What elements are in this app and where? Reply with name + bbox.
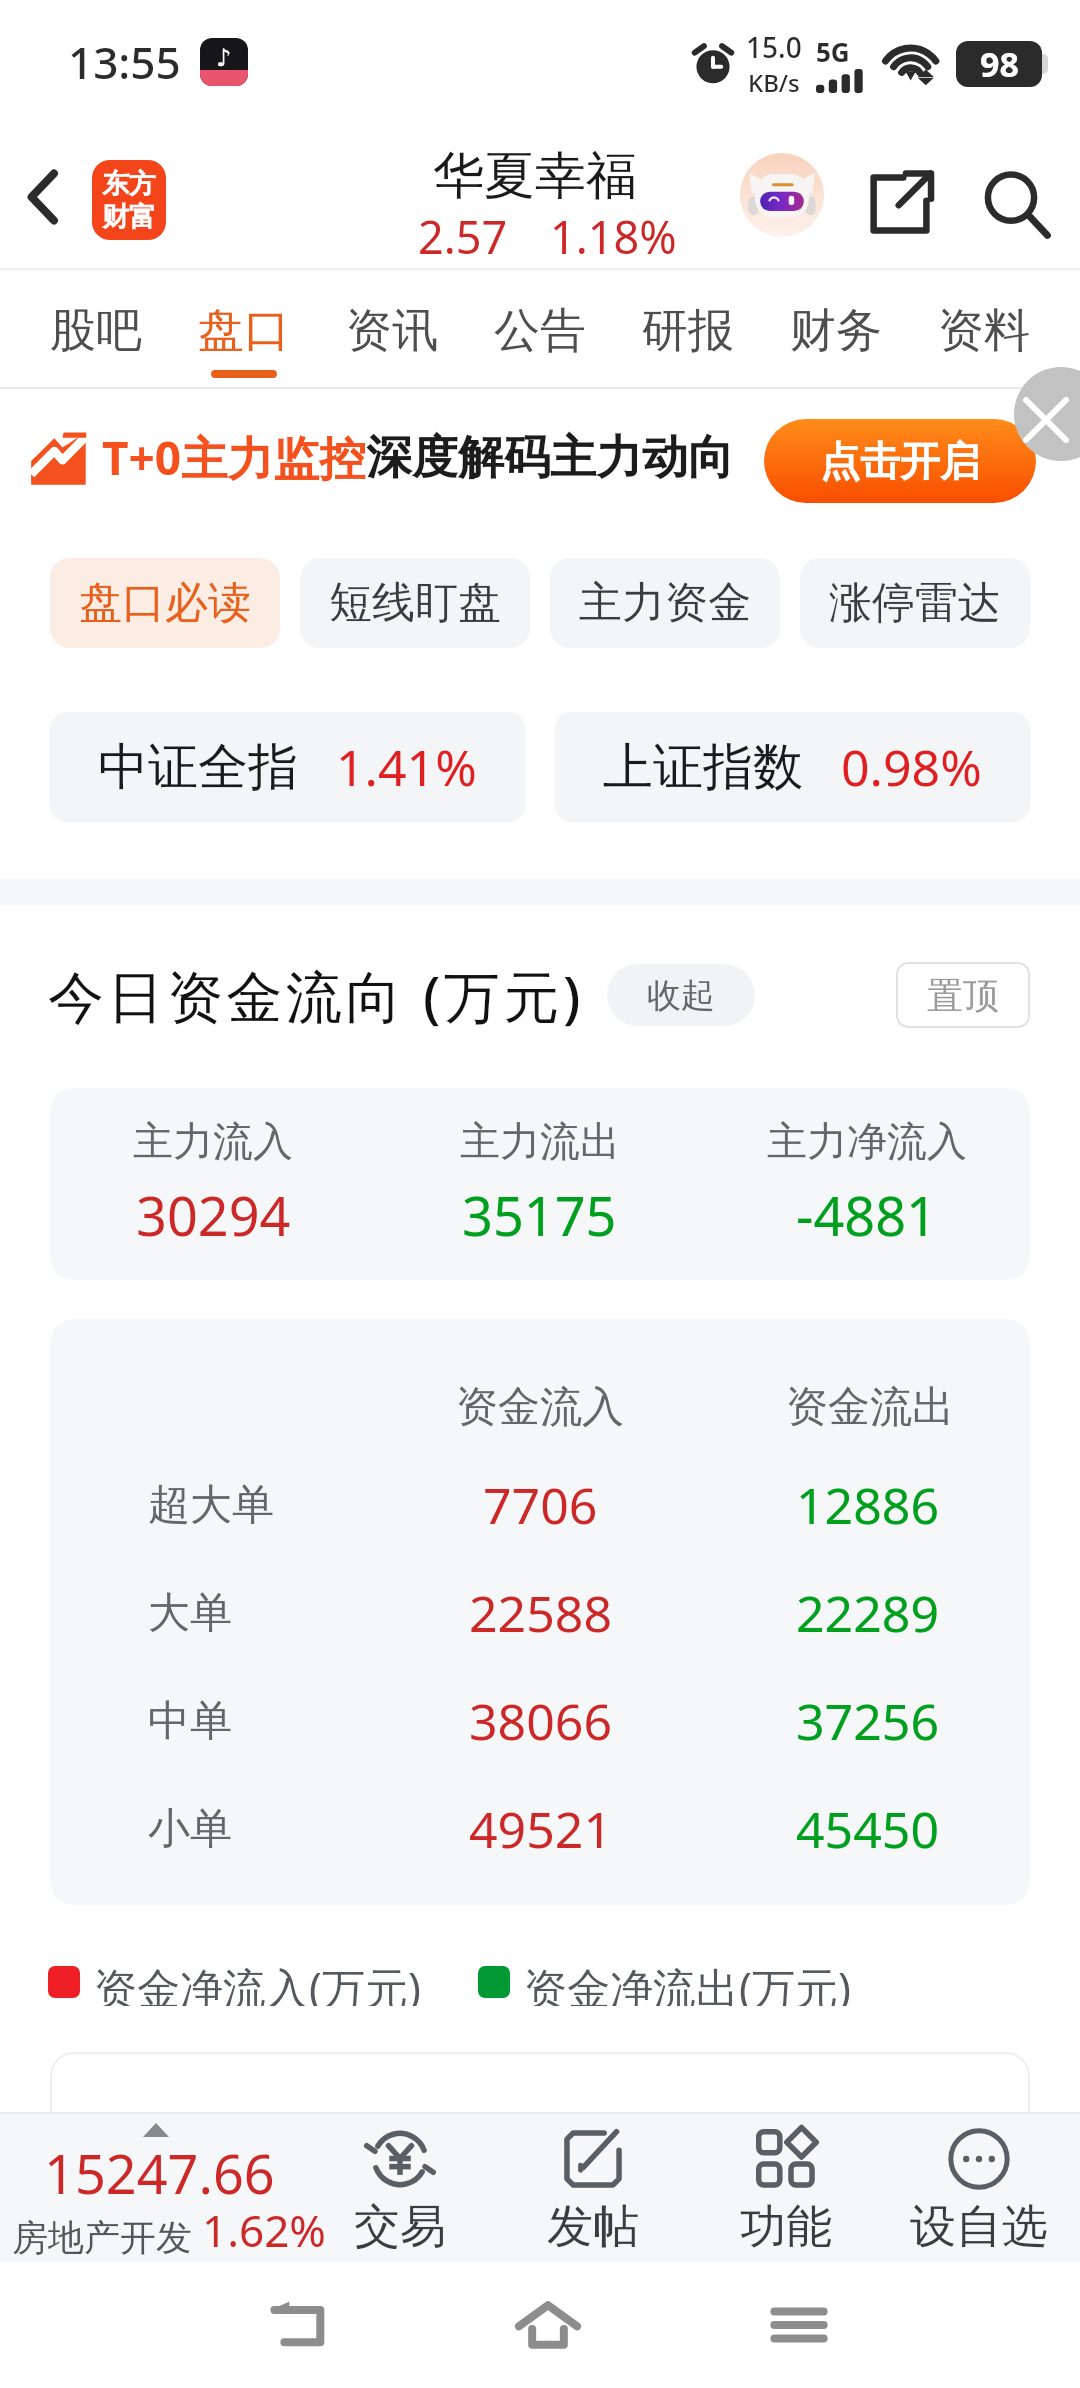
button[interactable]: 上证指数 (555, 712, 1030, 822)
button[interactable]: 设自选 (883, 2124, 1075, 2256)
staticText: 小单 (148, 1803, 232, 1856)
staticText: 资金净流出(万元) (524, 1958, 851, 2006)
button[interactable]: 中证全指 (50, 712, 525, 822)
button[interactable]: AI assistant (740, 153, 824, 237)
button[interactable]: 资金净流入(万元) (48, 1958, 421, 2006)
button[interactable]: Recent apps (744, 2270, 854, 2380)
button[interactable]: 置顶 (896, 962, 1030, 1028)
button[interactable]: Close banner (1014, 367, 1080, 461)
staticText: 交易 (354, 2198, 446, 2256)
staticText: 5G (816, 34, 850, 69)
staticText: 置顶 (927, 973, 999, 1018)
staticText: 22289 (796, 1579, 939, 1647)
button[interactable]: T+0主力监控 (0, 389, 1080, 524)
button[interactable]: 资料 (924, 288, 1044, 388)
staticText: 37256 (796, 1687, 939, 1755)
button[interactable]: 15247.66 (0, 2112, 330, 2262)
button[interactable]: 资金净流出(万元) (478, 1958, 851, 2006)
staticText: 中证全指 (98, 736, 298, 799)
staticText: -4881 (796, 1178, 937, 1252)
staticText: 98 (980, 41, 1019, 87)
button[interactable]: 资讯 (332, 288, 452, 388)
staticText: 资料 (938, 302, 1030, 360)
staticText: 中单 (148, 1695, 232, 1748)
staticText: 盘口 (198, 302, 290, 360)
staticText: 房地产开发 (12, 2215, 192, 2260)
staticText: 1.18% (550, 206, 677, 267)
staticText: T+0主力监控 (102, 426, 366, 489)
button[interactable]: Back (0, 152, 90, 242)
button[interactable]: 资金流入 (50, 1319, 1030, 1905)
button[interactable]: 短线盯盘 (300, 558, 530, 648)
staticText: 35175 (462, 1178, 617, 1252)
staticText: 0.98% (841, 733, 982, 801)
staticText: 涨停雷达 (829, 576, 1001, 630)
staticText: 7706 (483, 1471, 598, 1539)
staticText: 1.41% (336, 733, 477, 801)
staticText: ♪ (216, 44, 232, 72)
button[interactable]: Back (243, 2270, 353, 2380)
staticText: 上证指数 (603, 736, 803, 799)
button[interactable]: 发帖 (497, 2124, 689, 2256)
staticText: 主力净流入 (767, 1116, 967, 1166)
button[interactable]: 收起 (607, 964, 755, 1026)
staticText: 49521 (469, 1795, 612, 1863)
button[interactable]: 点击开启 (764, 419, 1036, 503)
button[interactable]: Home (493, 2270, 603, 2380)
staticText: 今日资金流向 (万元) (48, 957, 585, 1033)
staticText: 13:55 (68, 32, 181, 92)
staticText: 资金净流入(万元) (94, 1958, 421, 2006)
staticText: 研报 (642, 302, 734, 360)
button[interactable]: 主力资金 (550, 558, 780, 648)
staticText: 22588 (469, 1579, 612, 1647)
button[interactable]: 盘口 (184, 288, 304, 388)
staticText: 主力流入 (133, 1116, 293, 1166)
staticText: 资金流入 (456, 1381, 624, 1434)
staticText: 1.62% (202, 2200, 326, 2260)
staticText: 15247.66 (44, 2136, 275, 2210)
staticText: 公告 (494, 302, 586, 360)
staticText: 财务 (790, 302, 882, 360)
staticText: 主力流出 (460, 1116, 620, 1166)
button[interactable]: 股吧 (36, 288, 156, 388)
staticText: 深度解码主力动向 (366, 429, 734, 487)
button[interactable]: Fund flow chart (50, 2052, 1030, 2202)
button[interactable]: 主力流入 (50, 1088, 1030, 1280)
button[interactable]: 东方 财富 (92, 160, 166, 240)
staticText: 主力资金 (579, 576, 751, 630)
button[interactable]: 交易 (304, 2124, 496, 2256)
staticText: 38066 (469, 1687, 612, 1755)
button[interactable]: 财务 (776, 288, 896, 388)
staticText: 华夏幸福 (433, 144, 637, 208)
staticText: 12886 (796, 1471, 939, 1539)
staticText: 设自选 (910, 2198, 1048, 2256)
staticText: 盘口必读 (79, 576, 251, 630)
button[interactable]: 功能 (690, 2124, 882, 2256)
staticText: 功能 (740, 2198, 832, 2256)
staticText: 45450 (796, 1795, 939, 1863)
staticText: 东方 财富 (102, 167, 156, 234)
staticText: 2.57 (418, 206, 508, 267)
button[interactable]: 研报 (628, 288, 748, 388)
staticText: 资金流出 (786, 1381, 954, 1434)
staticText: 超大单 (148, 1479, 274, 1532)
staticText: 短线盯盘 (329, 576, 501, 630)
staticText: 股吧 (50, 302, 142, 360)
staticText: 30294 (136, 1178, 291, 1252)
staticText: 15.0 (746, 28, 802, 66)
button[interactable]: 涨停雷达 (800, 558, 1030, 648)
button[interactable]: Search (962, 150, 1074, 262)
staticText: 点击开启 (820, 436, 980, 486)
button[interactable]: 公告 (480, 288, 600, 388)
staticText: 大单 (148, 1587, 232, 1640)
staticText: 资讯 (346, 302, 438, 360)
staticText: 收起 (647, 974, 715, 1017)
button[interactable]: 盘口必读 (50, 558, 280, 648)
button[interactable]: Share (850, 150, 954, 254)
staticText: 发帖 (547, 2198, 639, 2256)
staticText: KB/s (748, 66, 800, 99)
